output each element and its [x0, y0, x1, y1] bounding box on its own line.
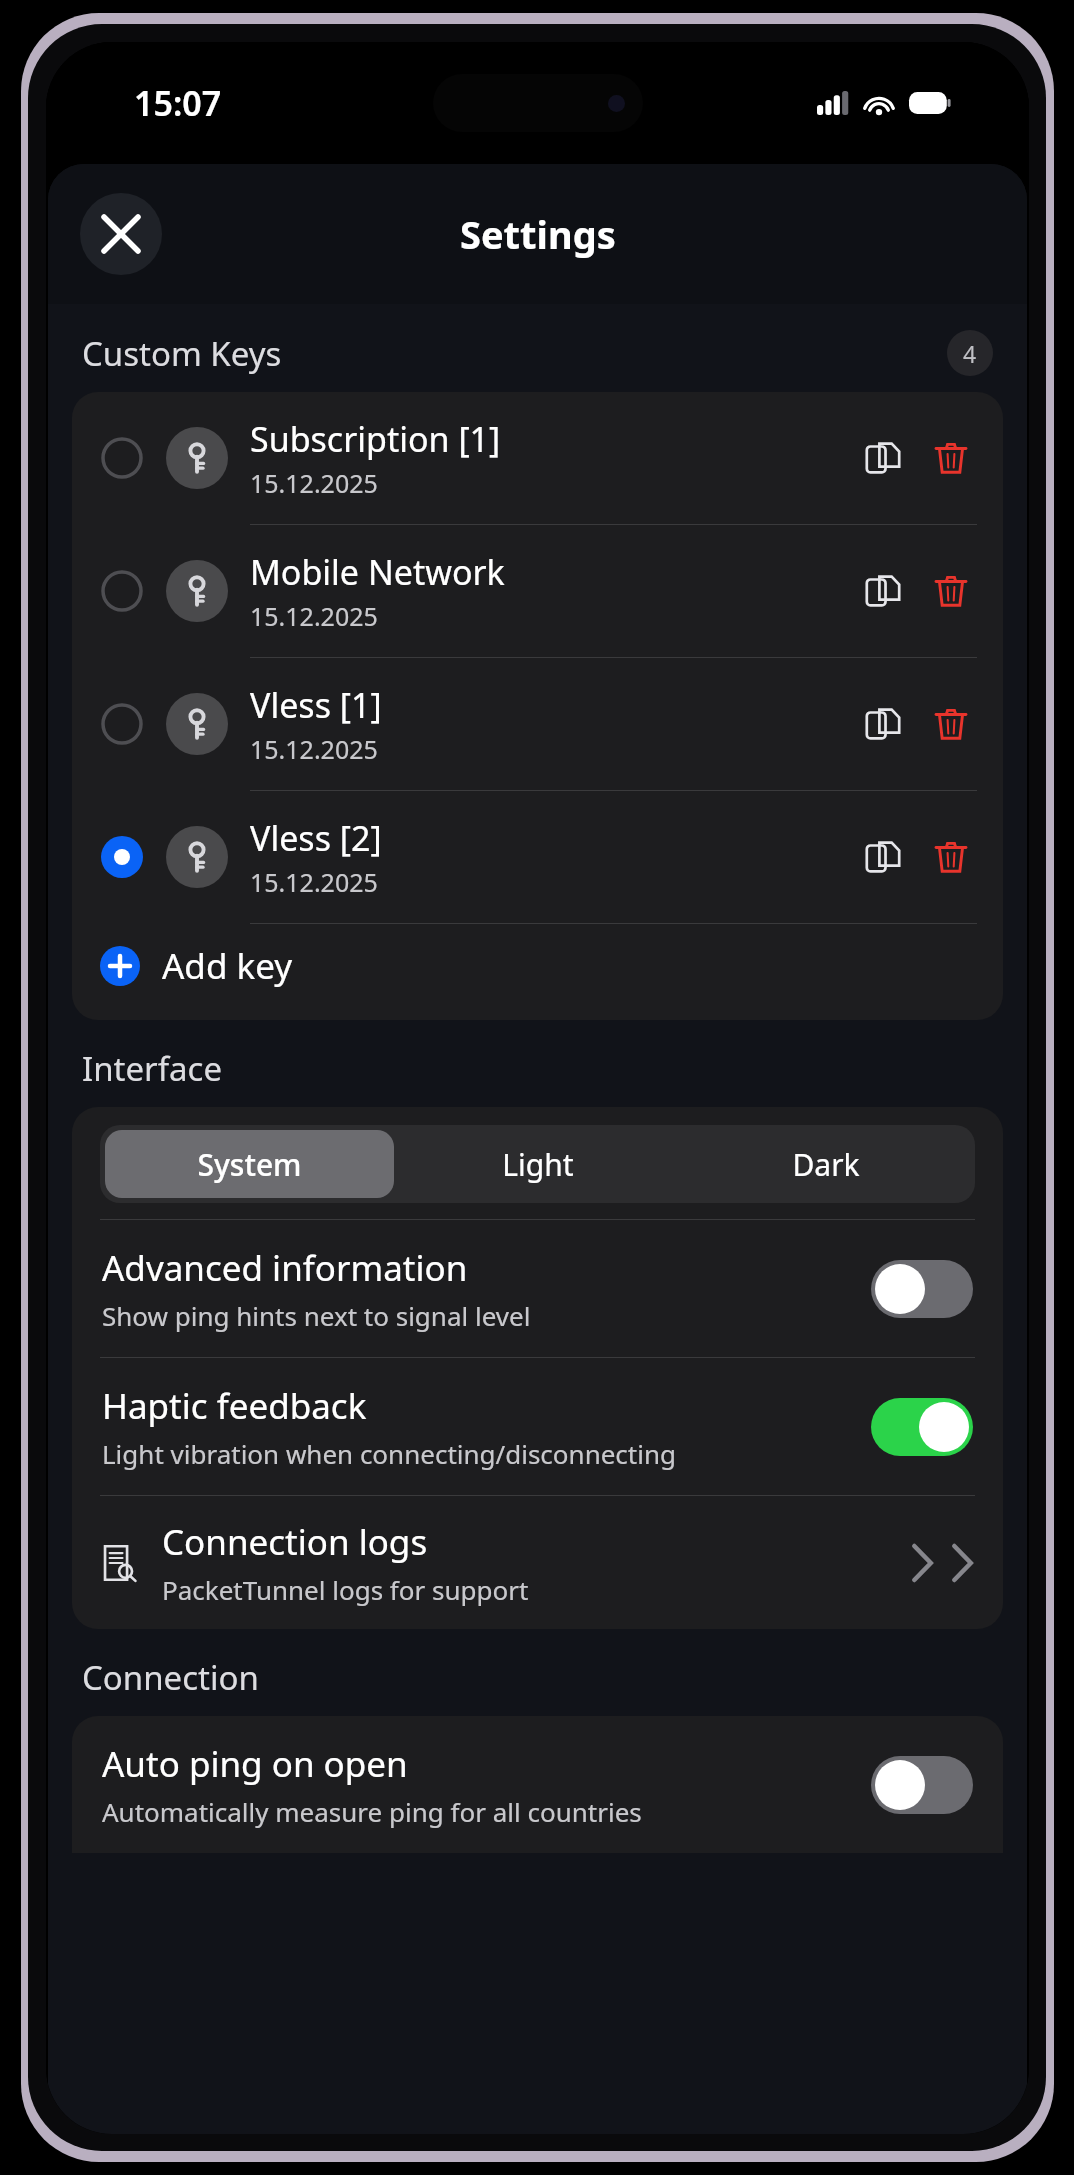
button[interactable]: Close [80, 193, 162, 275]
button[interactable]: Delete [925, 565, 977, 617]
staticText: Advanced information [102, 1244, 468, 1292]
button[interactable]: Advanced information [72, 1220, 1003, 1357]
button[interactable]: Delete [925, 831, 977, 883]
button[interactable] [871, 1398, 973, 1456]
button[interactable] [871, 1756, 973, 1814]
staticText: Automatically measure ping for all count… [102, 1794, 642, 1829]
staticText: 15.12.2025 [250, 732, 378, 766]
staticText: Interface [82, 1046, 223, 1091]
button[interactable]: Light [394, 1130, 682, 1198]
staticText: Light vibration when connecting/disconne… [102, 1436, 677, 1471]
staticText: Subscription [1] [250, 416, 501, 462]
staticText: Add key [162, 942, 293, 990]
staticText: 4 [963, 338, 977, 369]
staticText: Haptic feedback [102, 1382, 367, 1430]
staticText: System [197, 1144, 302, 1185]
staticText: Auto ping on open [102, 1740, 408, 1788]
staticText: Light [502, 1144, 574, 1185]
button[interactable] [871, 1260, 973, 1318]
staticText: PacketTunnel logs for support [162, 1572, 529, 1607]
staticText: 15.12.2025 [250, 865, 378, 899]
button[interactable]: Vless [2] [72, 791, 1003, 923]
button[interactable]: Copy [855, 696, 911, 752]
staticText: Dark [792, 1144, 860, 1185]
button[interactable]: Subscription [1] [72, 392, 1003, 524]
staticText: 15.12.2025 [250, 466, 378, 500]
staticText: Vless [2] [250, 815, 382, 861]
button[interactable]: Mobile Network [72, 525, 1003, 657]
button[interactable]: Add key [72, 924, 1003, 1020]
staticText: 15.12.2025 [250, 599, 378, 633]
button[interactable]: Copy [855, 563, 911, 619]
button[interactable]: Auto ping on open [72, 1716, 1003, 1853]
button[interactable]: Connection logs [72, 1496, 1003, 1629]
staticText: Custom Keys [82, 331, 282, 376]
staticText: Connection logs [162, 1518, 428, 1566]
button[interactable]: Delete [925, 432, 977, 484]
staticText: Mobile Network [250, 549, 505, 595]
staticText: Vless [1] [250, 682, 382, 728]
button[interactable]: System [105, 1130, 394, 1198]
button[interactable]: Haptic feedback [72, 1358, 1003, 1495]
button[interactable]: Dark [682, 1130, 970, 1198]
button[interactable]: Delete [925, 698, 977, 750]
button[interactable]: Vless [1] [72, 658, 1003, 790]
staticText: Connection [82, 1655, 259, 1700]
staticText: 15:07 [134, 80, 222, 126]
button[interactable]: Copy [855, 829, 911, 885]
button[interactable]: Copy [855, 430, 911, 486]
staticText: Show ping hints next to signal level [102, 1298, 531, 1333]
staticText: Settings [460, 208, 616, 260]
